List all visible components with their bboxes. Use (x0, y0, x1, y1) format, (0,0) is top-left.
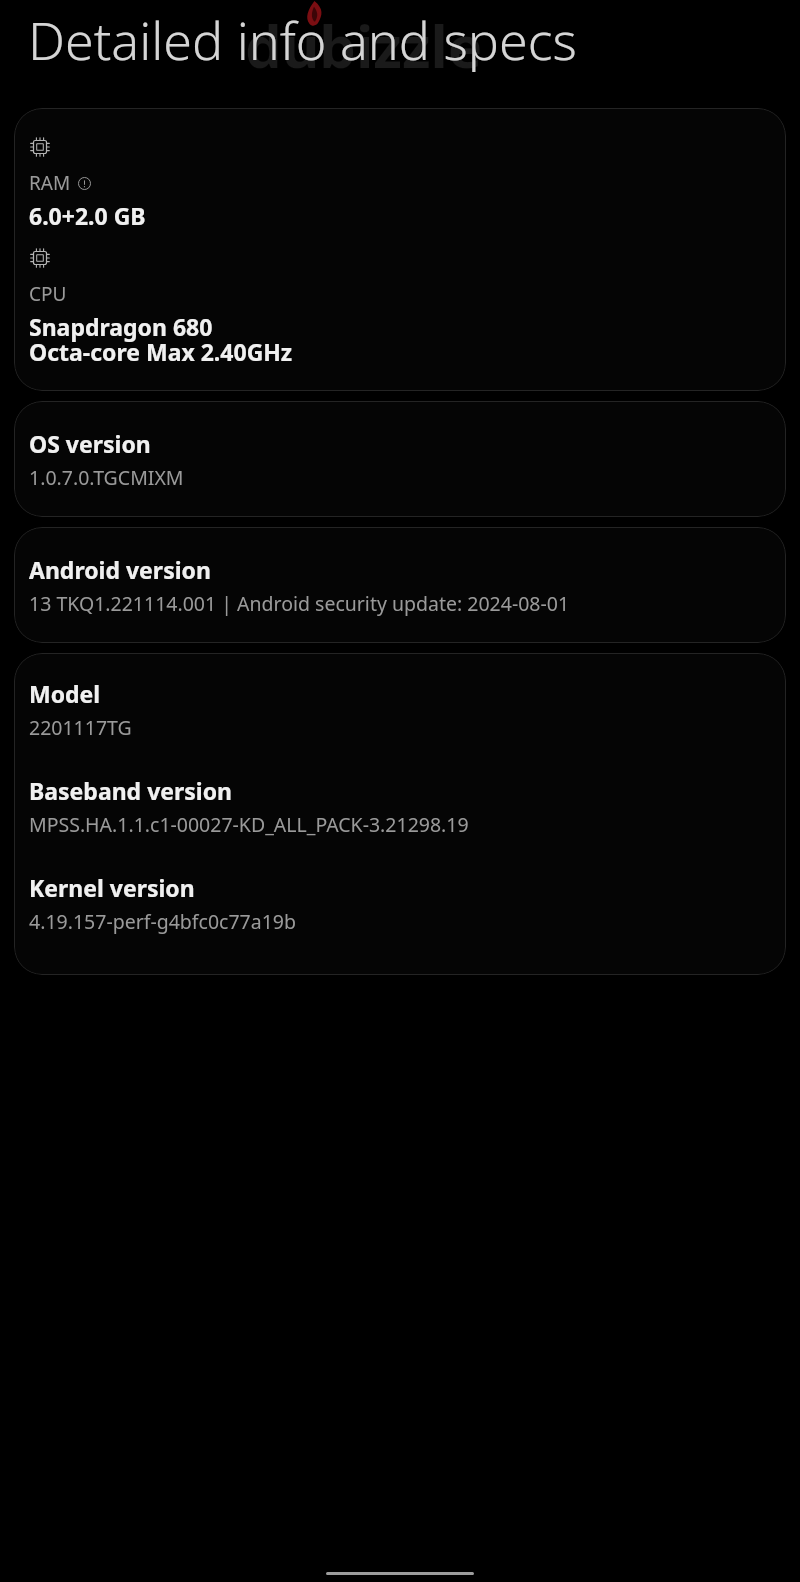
button[interactable]: RAM information (78, 177, 91, 190)
button[interactable]: RAM (14, 108, 786, 391)
staticText: 13 TKQ1.221114.001 | Android security up… (29, 590, 570, 617)
staticText: 2201117TG (29, 714, 132, 741)
button[interactable]: Android version (14, 527, 786, 643)
staticText: CPU (29, 281, 67, 307)
button[interactable]: OS version (14, 401, 786, 517)
staticText: 1.0.7.0.TGCMIXM (29, 464, 184, 491)
staticText: Kernel version (29, 872, 195, 903)
staticText: dubizzle (245, 6, 483, 85)
button[interactable]: Model (14, 653, 786, 975)
staticText: Snapdragon 680 Octa-core Max 2.40GHz (29, 311, 293, 367)
staticText: RAM (29, 170, 71, 196)
staticText: Model (29, 678, 101, 709)
staticText: OS version (29, 428, 151, 459)
staticText: Detailed info and specs (28, 4, 766, 75)
staticText: Baseband version (29, 775, 233, 806)
staticText: 6.0+2.0 GB (29, 200, 146, 231)
staticText: Android version (29, 554, 211, 585)
staticText: MPSS.HA.1.1.c1-00027-KD_ALL_PACK-3.21298… (29, 811, 469, 838)
staticText: 4.19.157-perf-g4bfc0c77a19b (29, 908, 296, 935)
